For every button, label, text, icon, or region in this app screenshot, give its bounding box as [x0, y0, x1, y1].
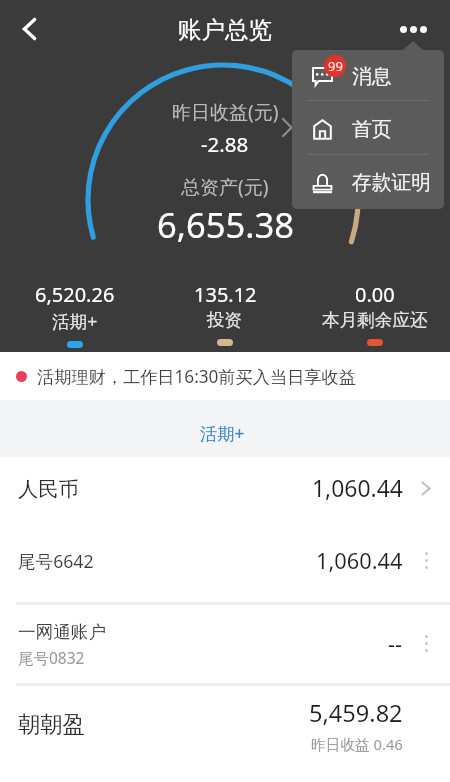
- staticText: 活期理财，工作日16:30前买入当日享收益: [37, 365, 356, 388]
- button[interactable]: 首页: [292, 103, 444, 156]
- button[interactable]: 135.12: [150, 281, 300, 351]
- button[interactable]: 人民币: [0, 457, 450, 520]
- staticText: 昨日收益 0.46: [311, 734, 403, 754]
- button[interactable]: Back: [0, 0, 58, 58]
- staticText: 6,655.38: [157, 201, 294, 248]
- staticText: --: [388, 629, 403, 659]
- button[interactable]: 活期理财，工作日16:30前买入当日享收益: [0, 352, 450, 400]
- staticText: 本月剩余应还: [322, 309, 428, 331]
- button[interactable]: 6,520.26: [0, 281, 150, 353]
- staticText: 人民币: [18, 476, 79, 502]
- staticText: 135.12: [194, 281, 257, 308]
- staticText: 存款证明: [352, 170, 432, 195]
- staticText: 账户总览: [178, 15, 272, 45]
- staticText: 总资产(元): [181, 174, 269, 200]
- staticText: 投资: [207, 309, 243, 331]
- staticText: 昨日收益(元): [172, 99, 279, 125]
- staticText: 首页: [352, 117, 392, 142]
- button[interactable]: 一网通账户: [0, 605, 450, 683]
- button[interactable]: 朝朝盈: [0, 686, 450, 768]
- button[interactable]: 尾号6642: [0, 520, 450, 602]
- staticText: 0.00: [355, 281, 395, 308]
- staticText: 99: [328, 57, 343, 75]
- button[interactable]: 活期+: [0, 400, 450, 457]
- button[interactable]: 99: [292, 50, 444, 103]
- staticText: 尾号0832: [18, 647, 85, 668]
- staticText: 活期+: [200, 422, 245, 445]
- button[interactable]: More: [421, 552, 431, 570]
- staticText: 1,060.44: [316, 546, 403, 576]
- staticText: 消息: [352, 64, 392, 89]
- staticText: 5,459.82: [309, 697, 403, 729]
- staticText: 1,060.44: [312, 473, 403, 504]
- button[interactable]: 存款证明: [292, 156, 444, 209]
- staticText: 尾号6642: [18, 549, 94, 573]
- button[interactable]: More: [421, 635, 431, 653]
- button[interactable]: More options: [384, 0, 442, 58]
- staticText: 6,520.26: [35, 281, 115, 308]
- button[interactable]: 0.00: [300, 281, 450, 351]
- staticText: 一网通账户: [18, 621, 106, 643]
- staticText: -2.88: [201, 130, 249, 158]
- staticText: 朝朝盈: [18, 711, 85, 739]
- staticText: 活期+: [52, 309, 98, 333]
